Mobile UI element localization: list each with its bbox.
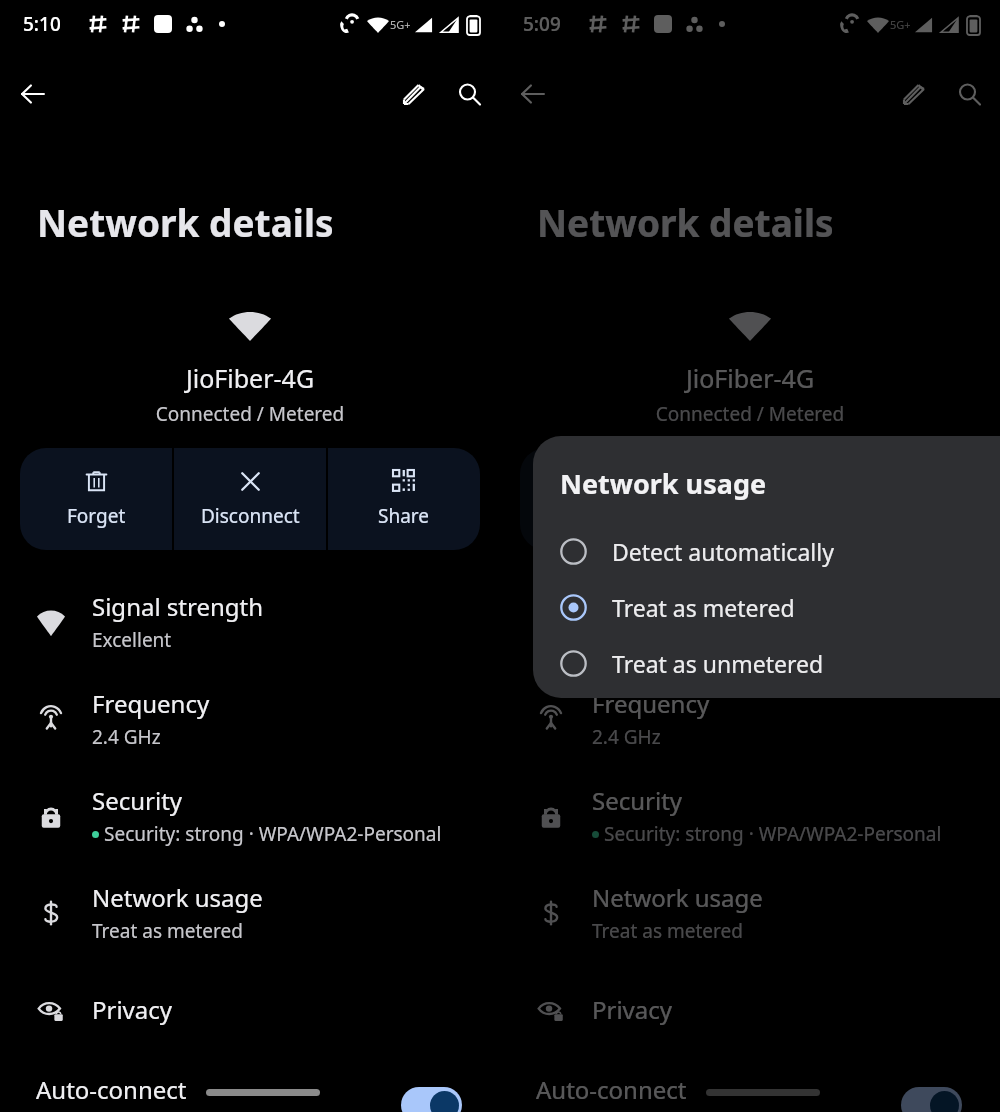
staticText: Share [378, 503, 430, 529]
staticText: Detect automatically [612, 536, 834, 567]
button[interactable]: Back [9, 70, 57, 118]
button[interactable]: Edit [389, 70, 437, 118]
button[interactable]: Disconnect [174, 448, 326, 550]
staticText: 5:09 [523, 11, 561, 37]
staticText: Security [92, 784, 183, 817]
button[interactable]: Auto-connect [401, 1087, 462, 1112]
button[interactable]: Frequency [500, 670, 1000, 767]
staticText: Security [592, 784, 683, 817]
staticText: 5G+ [890, 17, 911, 32]
staticText: Treat as metered [592, 918, 743, 944]
staticText: 5G+ [390, 17, 411, 32]
staticText: Treat as metered [92, 918, 243, 944]
staticText: Treat as metered [612, 592, 795, 623]
button[interactable]: Frequency [0, 670, 500, 767]
staticText: Excellent [92, 627, 172, 653]
staticText: JioFiber-4G [0, 361, 500, 395]
button[interactable]: Auto-connect [901, 1087, 962, 1112]
button[interactable]: Forget [20, 448, 172, 550]
staticText: Auto-connect [536, 1073, 687, 1106]
staticText: 5:10 [23, 11, 61, 37]
staticText: Network usage [92, 881, 263, 914]
staticText: Signal strength [592, 590, 764, 623]
button[interactable]: Treat as metered [560, 579, 1000, 635]
staticText: Privacy [92, 993, 173, 1026]
staticText: Treat as unmetered [612, 648, 824, 679]
button[interactable]: Network usage [0, 864, 500, 961]
staticText: Auto-connect [36, 1073, 187, 1106]
staticText: Disconnect [201, 503, 300, 529]
staticText: Network usage [560, 465, 767, 502]
button[interactable]: Treat as unmetered [560, 635, 1000, 691]
button[interactable]: Privacy [0, 961, 500, 1058]
button[interactable]: Back [509, 70, 557, 118]
staticText: 2.4 GHz [592, 724, 661, 750]
button[interactable]: Network usage [500, 864, 1000, 961]
staticText: Network details [37, 197, 334, 247]
staticText: Network usage [592, 881, 763, 914]
staticText: Signal strength [92, 590, 264, 623]
button[interactable]: Edit [889, 70, 937, 118]
button[interactable]: Disconnect [674, 448, 826, 550]
button[interactable]: Share [328, 448, 480, 550]
staticText: Connected / Metered [0, 401, 500, 427]
button[interactable]: Signal strength [0, 573, 500, 670]
staticText: Privacy [592, 993, 673, 1026]
button[interactable]: Search [945, 70, 993, 118]
button[interactable]: Detect automatically [560, 523, 1000, 579]
button[interactable]: Security [0, 767, 500, 864]
button[interactable]: Security [500, 767, 1000, 864]
staticText: Connected / Metered [500, 401, 1000, 427]
button[interactable]: Privacy [500, 961, 1000, 1058]
staticText: Security: strong · WPA/WPA2-Personal [604, 821, 942, 847]
staticText: Network details [537, 197, 834, 247]
staticText: Forget [67, 503, 126, 529]
button[interactable]: Signal strength [500, 573, 1000, 670]
staticText: Frequency [592, 687, 710, 720]
staticText: Security: strong · WPA/WPA2-Personal [104, 821, 442, 847]
button[interactable]: Search [445, 70, 493, 118]
staticText: 2.4 GHz [92, 724, 161, 750]
button[interactable]: Forget [520, 448, 672, 550]
staticText: JioFiber-4G [500, 361, 1000, 395]
staticText: Frequency [92, 687, 210, 720]
button[interactable]: Share [828, 448, 980, 550]
